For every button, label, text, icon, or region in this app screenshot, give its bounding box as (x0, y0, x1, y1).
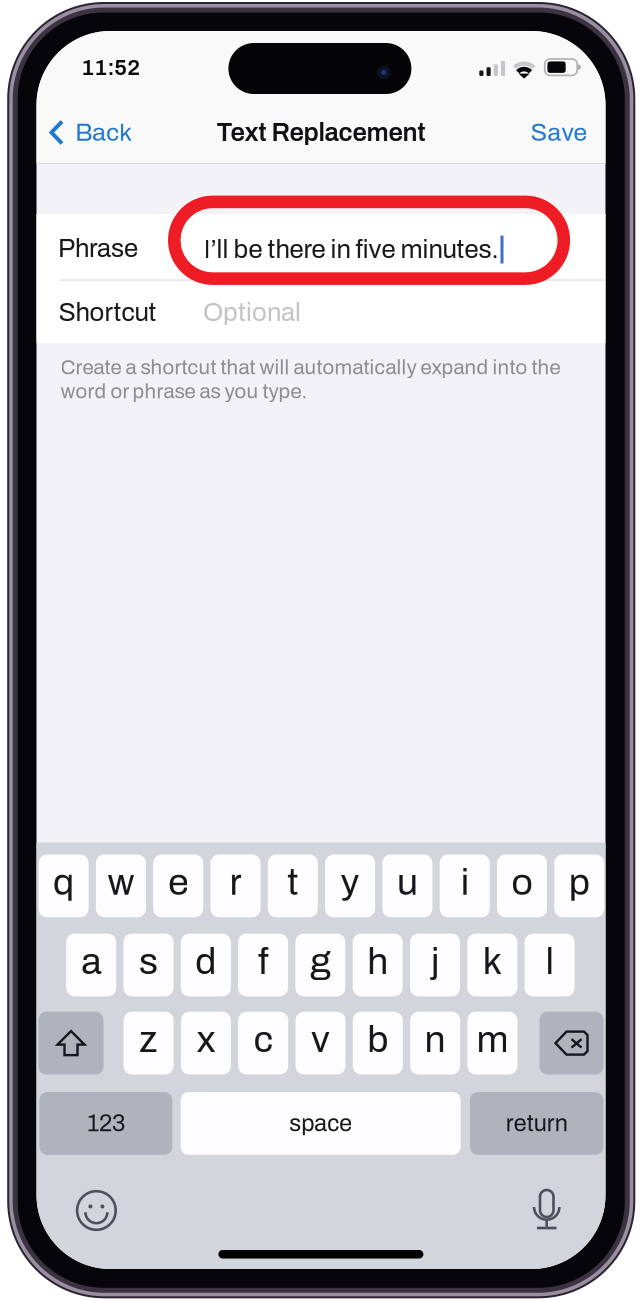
staticText: 123 (87, 1111, 125, 1136)
button[interactable]: Dictate (532, 1189, 561, 1230)
button[interactable]: r (210, 854, 260, 917)
button[interactable]: w (96, 854, 146, 917)
staticText: b (367, 1019, 388, 1060)
staticText: o (511, 862, 532, 903)
button[interactable]: h (353, 934, 403, 996)
button[interactable]: d (181, 934, 231, 996)
button[interactable]: q (39, 854, 89, 917)
button[interactable]: f (238, 934, 288, 996)
button[interactable]: l (525, 934, 575, 996)
button[interactable]: Save (516, 114, 603, 150)
button[interactable]: space (181, 1092, 461, 1155)
button[interactable]: v (295, 1012, 345, 1074)
button[interactable]: u (382, 854, 432, 917)
button[interactable]: t (268, 854, 318, 917)
staticText: Shortcut (58, 298, 156, 326)
staticText: I’ll be there in five minutes. (203, 235, 498, 263)
button[interactable]: x (181, 1012, 231, 1074)
staticText: i (461, 862, 469, 903)
staticText: j (431, 941, 439, 982)
staticText: Optional (203, 298, 301, 326)
button[interactable]: Delete (539, 1012, 603, 1074)
button[interactable]: Back (37, 114, 146, 150)
button[interactable]: 123 (39, 1092, 172, 1155)
staticText: v (311, 1019, 330, 1060)
staticText: Back (75, 119, 132, 146)
staticText: z (139, 1019, 158, 1060)
button[interactable]: j (410, 934, 460, 996)
staticText: l (546, 941, 554, 982)
staticText: s (139, 941, 158, 982)
button[interactable]: c (238, 1012, 288, 1074)
button[interactable]: b (353, 1012, 403, 1074)
staticText: h (367, 941, 388, 982)
staticText: k (483, 941, 502, 982)
button[interactable]: y (325, 854, 375, 917)
staticText: 11:52 (81, 55, 140, 80)
button[interactable]: a (66, 934, 116, 996)
staticText: w (107, 862, 134, 903)
button[interactable]: m (467, 1012, 517, 1074)
staticText: Text Replacement (216, 118, 425, 146)
staticText: x (196, 1019, 215, 1060)
button[interactable]: k (467, 934, 517, 996)
staticText: p (569, 862, 590, 903)
button[interactable]: o (497, 854, 547, 917)
staticText: t (287, 862, 298, 903)
staticText: return (506, 1111, 568, 1136)
staticText: word or phrase as you type. (61, 380, 308, 402)
staticText: e (168, 862, 188, 903)
staticText: Create a shortcut that will automaticall… (61, 356, 561, 378)
staticText: c (254, 1019, 273, 1060)
staticText: u (397, 862, 418, 903)
button[interactable]: g (295, 934, 345, 996)
staticText: g (310, 941, 331, 982)
staticText: f (258, 941, 268, 982)
staticText: q (53, 862, 74, 903)
staticText: r (229, 862, 241, 903)
staticText: Phrase (58, 234, 138, 262)
button[interactable]: n (410, 1012, 460, 1074)
staticText: a (81, 941, 101, 982)
button[interactable]: return (470, 1092, 603, 1155)
staticText: n (425, 1019, 446, 1060)
button[interactable]: s (123, 934, 173, 996)
button[interactable]: Emoji (76, 1190, 117, 1231)
button[interactable]: e (153, 854, 203, 917)
button[interactable]: Shift (38, 1012, 103, 1074)
button[interactable]: i (440, 854, 490, 917)
button[interactable]: z (124, 1012, 174, 1074)
staticText: m (476, 1019, 508, 1060)
staticText: y (341, 862, 360, 903)
staticText: space (289, 1111, 352, 1136)
staticText: d (195, 941, 216, 982)
button[interactable]: p (554, 854, 604, 917)
staticText: Save (531, 119, 588, 146)
